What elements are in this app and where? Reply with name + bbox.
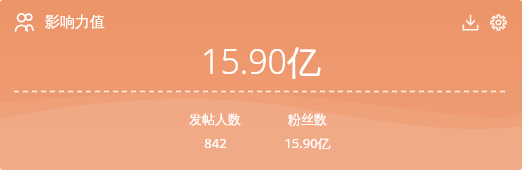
button[interactable]: Settings bbox=[484, 8, 512, 36]
button[interactable]: 影响力值 bbox=[14, 8, 105, 37]
staticText: 15.90亿 bbox=[284, 134, 331, 152]
button[interactable]: 粉丝数 bbox=[263, 110, 351, 153]
staticText: 842 bbox=[204, 134, 227, 152]
staticText: 15.90亿 bbox=[201, 38, 321, 84]
button[interactable]: 发帖人数 bbox=[171, 110, 259, 153]
button[interactable]: Download bbox=[456, 8, 484, 36]
staticText: 影响力值 bbox=[45, 13, 105, 32]
staticText: 粉丝数 bbox=[288, 111, 327, 127]
staticText: 发帖人数 bbox=[189, 111, 241, 127]
